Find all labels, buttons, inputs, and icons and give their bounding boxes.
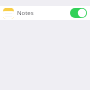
button[interactable]: Notes [0,6,90,20]
staticText: Notes [17,9,70,17]
button[interactable]: Notes toggle [70,8,87,18]
